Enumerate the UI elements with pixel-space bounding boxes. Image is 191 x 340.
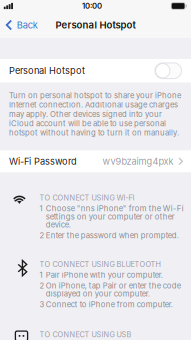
button[interactable]: Wi-Fi Password: [0, 150, 191, 172]
staticText: 2: [39, 231, 44, 240]
staticText: TO CONNECT USING WI-FI: [39, 193, 134, 202]
staticText: Wi-Fi Password: [9, 156, 77, 167]
button[interactable]: Back: [0, 15, 44, 35]
button[interactable]: Personal Hotspot: [0, 59, 191, 82]
staticText: Choose "nns iPhone" from the Wi-Fi setti…: [46, 204, 184, 229]
staticText: 10:00: [82, 1, 102, 11]
staticText: Pair iPhone with your computer.: [46, 270, 163, 280]
staticText: 3: [39, 300, 44, 309]
staticText: 1: [39, 270, 42, 280]
staticText: Enter the password when prompted.: [46, 231, 179, 240]
staticText: TO CONNECT USING USB: [39, 330, 131, 339]
staticText: Back: [17, 19, 38, 31]
staticText: On iPhone, tap Pair or enter the code di…: [46, 281, 181, 298]
staticText: Connect to iPhone from computer.: [46, 300, 173, 309]
staticText: Personal Hotspot: [9, 65, 85, 76]
staticText: TO CONNECT USING BLUETOOTH: [39, 260, 160, 269]
staticText: Personal Hotspot: [55, 19, 135, 31]
staticText: Turn on personal hotspot to share your i…: [9, 91, 181, 137]
staticText: 1: [39, 204, 42, 213]
staticText: 2: [39, 281, 44, 290]
staticText: wv9bzaimg4pxk: [102, 156, 173, 167]
